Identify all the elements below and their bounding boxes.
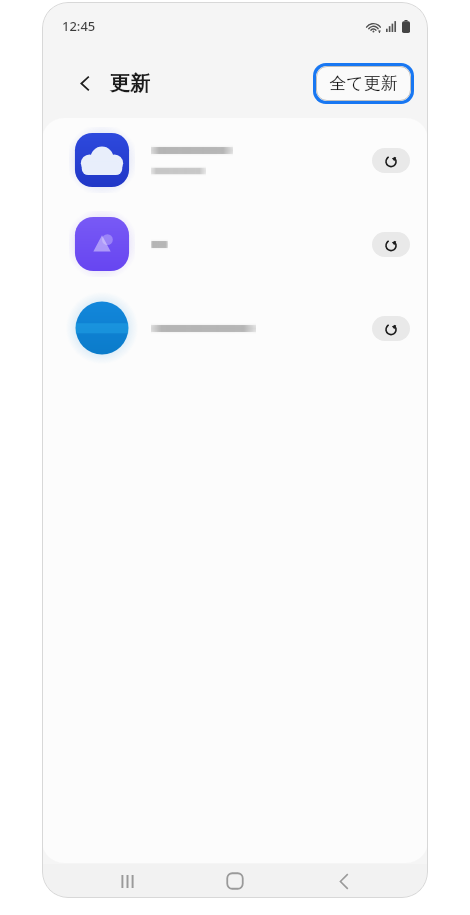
button[interactable]: Back — [70, 68, 100, 98]
button[interactable]: Update — [42, 118, 428, 202]
button[interactable]: Home — [211, 864, 259, 898]
button[interactable]: Update — [42, 286, 428, 370]
button[interactable]: Update — [42, 202, 428, 286]
staticText: 更新 — [110, 71, 150, 96]
staticText: 12:45 — [62, 17, 96, 35]
staticText: 全て更新 — [329, 73, 398, 94]
button[interactable]: Update — [372, 316, 410, 341]
button[interactable]: Update — [372, 232, 410, 257]
button[interactable]: 全て更新 — [316, 66, 411, 101]
button[interactable]: Recents — [103, 864, 151, 898]
button[interactable]: Back — [320, 864, 368, 898]
button[interactable]: Update — [372, 148, 410, 173]
